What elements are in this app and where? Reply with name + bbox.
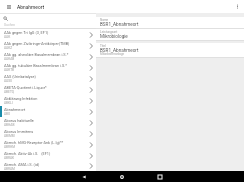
staticText: Name <box>100 18 109 22</box>
staticText: AAKZ <box>4 46 13 50</box>
staticText: AAk gegen Zivikringe-Antikörper(TMB) <box>4 41 70 46</box>
staticText: BSR1_Abnahmeort <box>100 22 139 27</box>
staticText: ABKLI <box>4 101 13 105</box>
button[interactable]: Name <box>96 17 244 29</box>
staticText: ABETA-Quotient i.Liquor* <box>4 85 47 90</box>
button[interactable]: Search <box>0 13 96 29</box>
staticText: AAk gg. alveoläre Basalmembran i.S.* <box>4 52 69 57</box>
staticText: BSR1_Abnahmeort <box>100 48 139 53</box>
button[interactable]: Aborus habituelle <box>0 117 96 128</box>
staticText: Aborus habituelle <box>4 118 34 123</box>
staticText: Titel <box>100 44 107 48</box>
staticText: AAS (Urinkatalyse) <box>4 74 36 79</box>
button[interactable]: Abklärung Infektion <box>0 95 96 106</box>
button[interactable]: AAS (Urinkatalyse) <box>0 73 96 84</box>
other: Search <box>3 16 8 21</box>
staticText: Leistungsart <box>100 30 118 34</box>
button[interactable]: Abrech. Aktiv-Ak i.S. (EF1) <box>0 150 96 161</box>
button[interactable]: Home <box>114 171 130 182</box>
staticText: ABIMM <box>4 134 15 138</box>
button[interactable]: AAk gg. tubuläre Basalmembran i.S.* <box>0 62 96 73</box>
staticText: Aborus Immitens <box>4 129 34 134</box>
button[interactable]: AAk gegen Tri IgG (3, EF1) <box>0 29 96 40</box>
button[interactable]: AAk gg. alveoläre Basalmembran i.S.* <box>0 51 96 62</box>
staticText: ABO <box>4 112 11 116</box>
button[interactable]: Back <box>76 171 92 182</box>
button[interactable]: AAk gegen Zivikringe-Antikörper(TMB) <box>0 40 96 51</box>
staticText: Abnahmeort <box>17 4 45 10</box>
staticText: AAk gg. tubuläre Basalmembran i.S.* <box>4 63 67 68</box>
button[interactable]: Open navigation drawer <box>0 0 17 13</box>
button[interactable]: Titel <box>96 43 244 58</box>
staticText: Mitarbeiteranlage <box>100 52 125 56</box>
staticText: Abrech. Aktiv-Ak i.S. (EF1) <box>4 151 51 156</box>
staticText: ABRAM <box>4 167 15 171</box>
button[interactable]: Leistungsart <box>96 29 244 41</box>
staticText: ABRHM <box>4 145 16 149</box>
staticText: AAKAB <box>4 57 15 61</box>
staticText: AASU <box>4 79 13 83</box>
button[interactable]: Recent apps <box>152 171 168 182</box>
button[interactable]: Abrech. hMG-Rezeptor-Ank (L.Ig)** <box>0 139 96 150</box>
button[interactable]: Abrech. AMA i.S. (id) <box>0 161 96 171</box>
staticText: ABRAK <box>4 156 15 160</box>
staticText: Abrech. AMA i.S. (id) <box>4 162 40 167</box>
staticText: Suchen <box>4 23 16 27</box>
button[interactable]: More options <box>230 0 244 13</box>
staticText: Abklärung Infektion <box>4 96 38 101</box>
staticText: AAKTB <box>4 68 15 72</box>
staticText: Abrech. hMG-Rezeptor-Ank (L.Ig)** <box>4 140 64 145</box>
staticText: ABETQ <box>4 90 14 94</box>
staticText: AAk gegen Tri IgG (3, EF1) <box>4 30 49 35</box>
staticText: Mikrobiologie <box>100 34 128 39</box>
staticText: ABHAB <box>4 123 15 127</box>
button[interactable]: ABETA-Quotient i.Liquor* <box>0 84 96 95</box>
button[interactable]: Abnahmeort <box>0 106 96 117</box>
staticText: AAK <box>4 35 11 39</box>
button[interactable]: Aborus Immitens <box>0 128 96 139</box>
staticText: Abnahmeort <box>4 107 26 112</box>
